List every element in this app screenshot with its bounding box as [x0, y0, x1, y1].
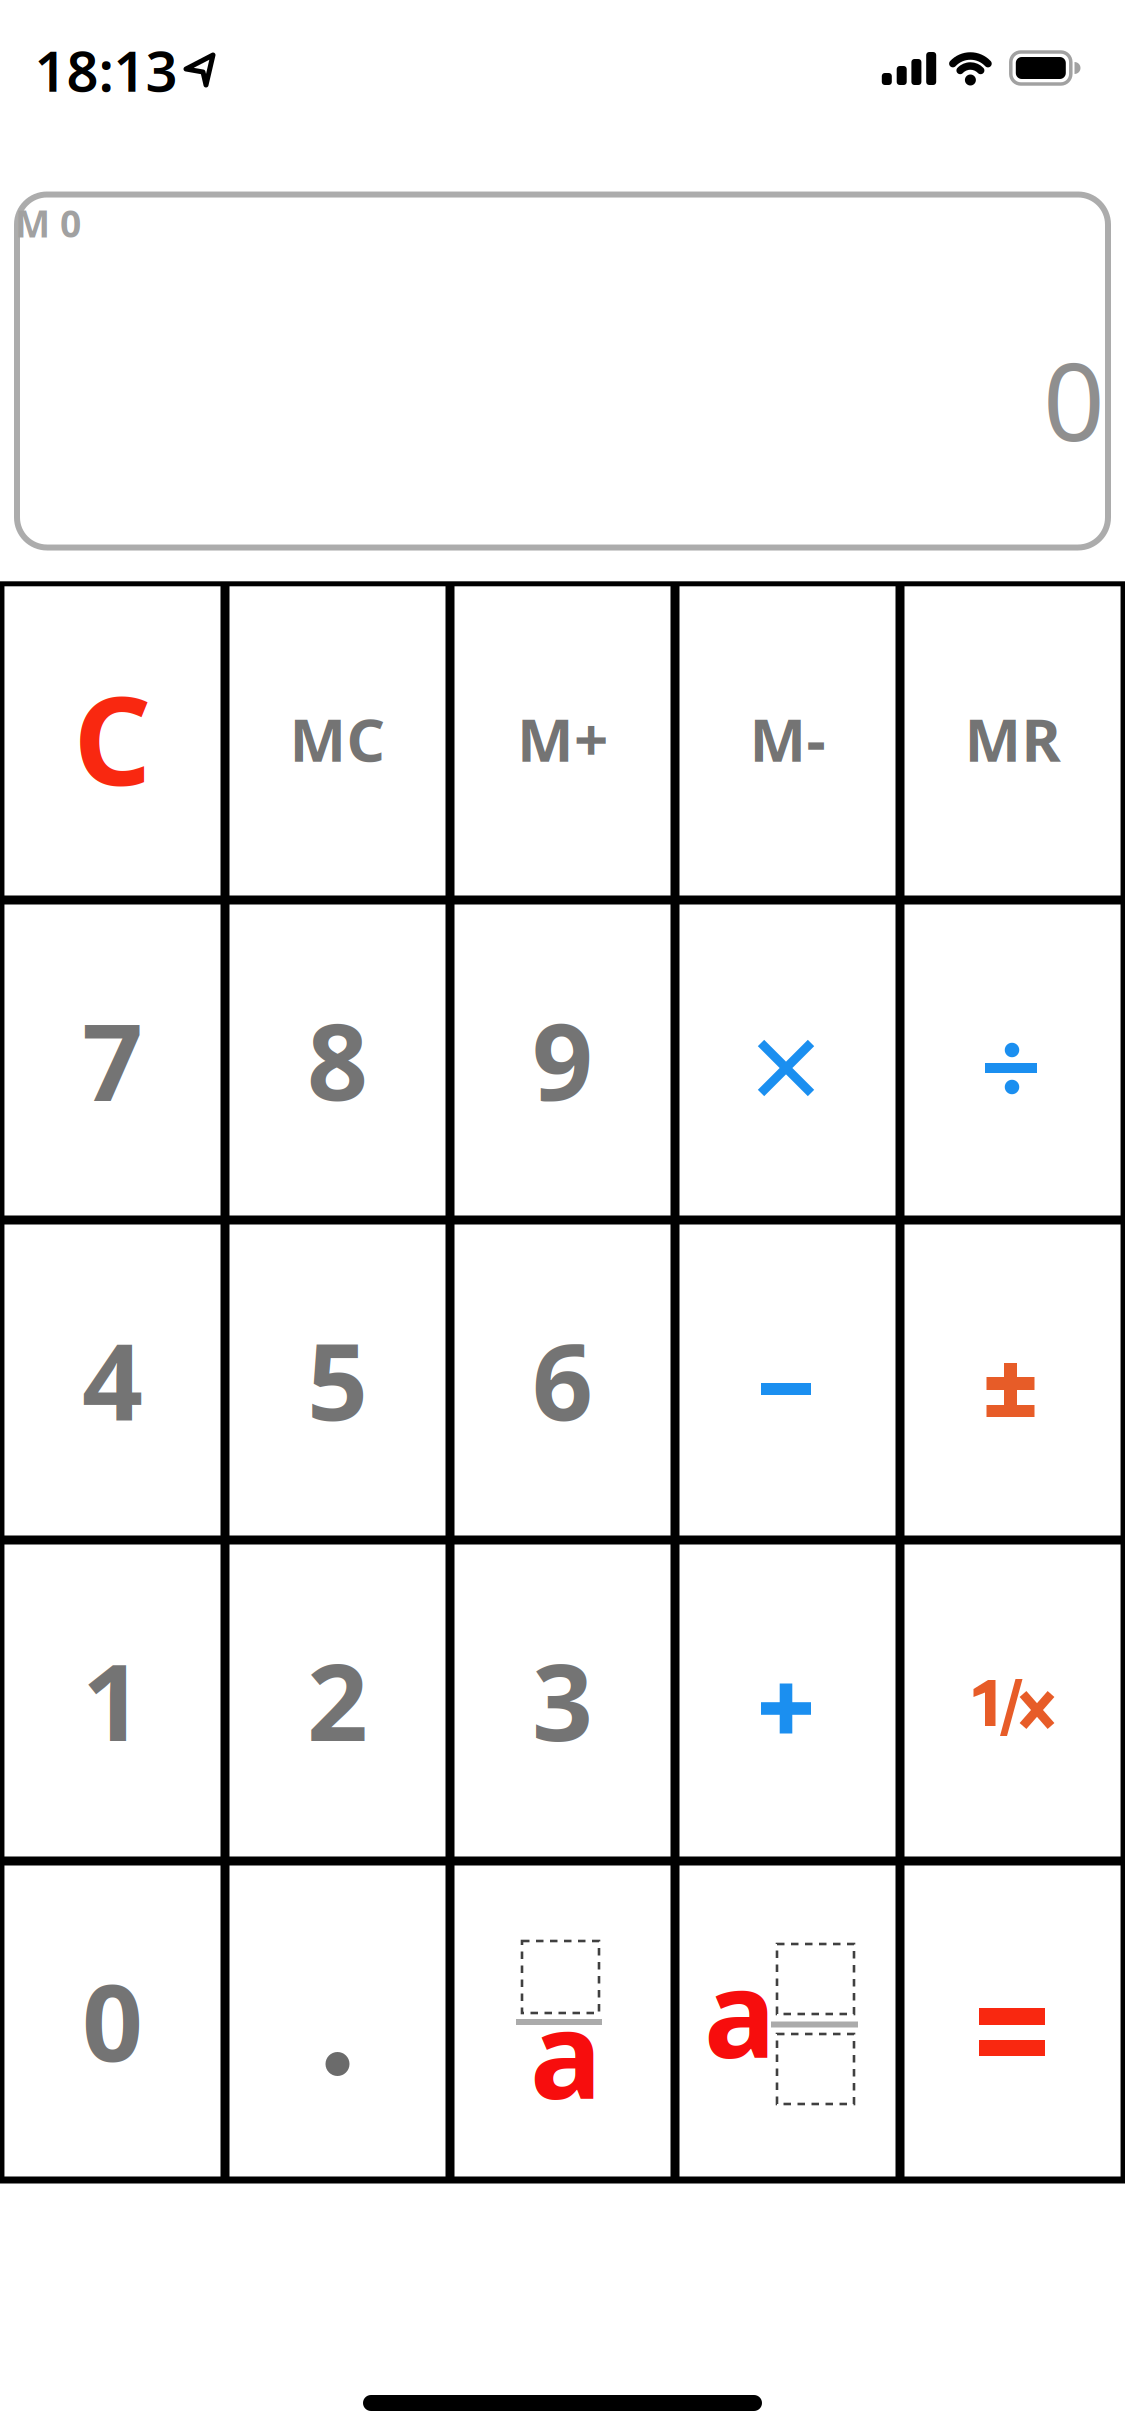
staticText: 8 [307, 988, 368, 1130]
staticText: 1 [82, 1629, 143, 1770]
staticText: C [73, 658, 151, 819]
button[interactable]: 5 [225, 1220, 450, 1540]
button[interactable]: 3 [450, 1540, 675, 1861]
staticText: 3 [532, 1629, 593, 1770]
button[interactable]: 4 [0, 1220, 225, 1540]
button[interactable]: C [0, 583, 225, 900]
staticText: MC [289, 699, 385, 778]
button[interactable]: MR [900, 583, 1125, 900]
button[interactable]: Reciprocal [900, 1540, 1125, 1861]
button[interactable]: Plus or minus [900, 1220, 1125, 1540]
button[interactable]: Add [675, 1540, 900, 1861]
staticText: 7 [82, 988, 143, 1130]
button[interactable]: MC [225, 583, 450, 900]
staticText: M 0 [15, 198, 81, 248]
button[interactable]: 2 [225, 1540, 450, 1861]
staticText: M- [749, 699, 825, 778]
staticText: a [704, 1932, 776, 2091]
staticText: 18:13 [34, 33, 177, 107]
button[interactable]: Subtract [675, 1220, 900, 1540]
button[interactable]: Divide [900, 900, 1125, 1220]
button[interactable]: M- [675, 583, 900, 900]
button[interactable]: 9 [450, 900, 675, 1220]
button[interactable]: 7 [0, 900, 225, 1220]
staticText: 0 [1043, 327, 1105, 471]
staticText: 0 [82, 1949, 143, 2091]
staticText: MR [964, 699, 1060, 778]
staticText: 9 [532, 988, 593, 1130]
staticText: 5 [307, 1308, 368, 1450]
staticText: 4 [82, 1308, 143, 1450]
button[interactable]: 6 [450, 1220, 675, 1540]
staticText: a [530, 1973, 602, 2132]
button[interactable]: 1 [0, 1540, 225, 1861]
button[interactable]: Equals [900, 1861, 1125, 2181]
button[interactable]: Multiply [675, 900, 900, 1220]
staticText: 2 [307, 1629, 368, 1770]
button[interactable]: Mixed number [675, 1861, 900, 2181]
button[interactable]: Decimal point [225, 1861, 450, 2181]
button[interactable]: 0 [0, 1861, 225, 2181]
staticText: M+ [517, 699, 608, 778]
button[interactable]: M+ [450, 583, 675, 900]
staticText: 6 [532, 1308, 593, 1450]
button[interactable]: Fraction [450, 1861, 675, 2181]
button[interactable]: 8 [225, 900, 450, 1220]
